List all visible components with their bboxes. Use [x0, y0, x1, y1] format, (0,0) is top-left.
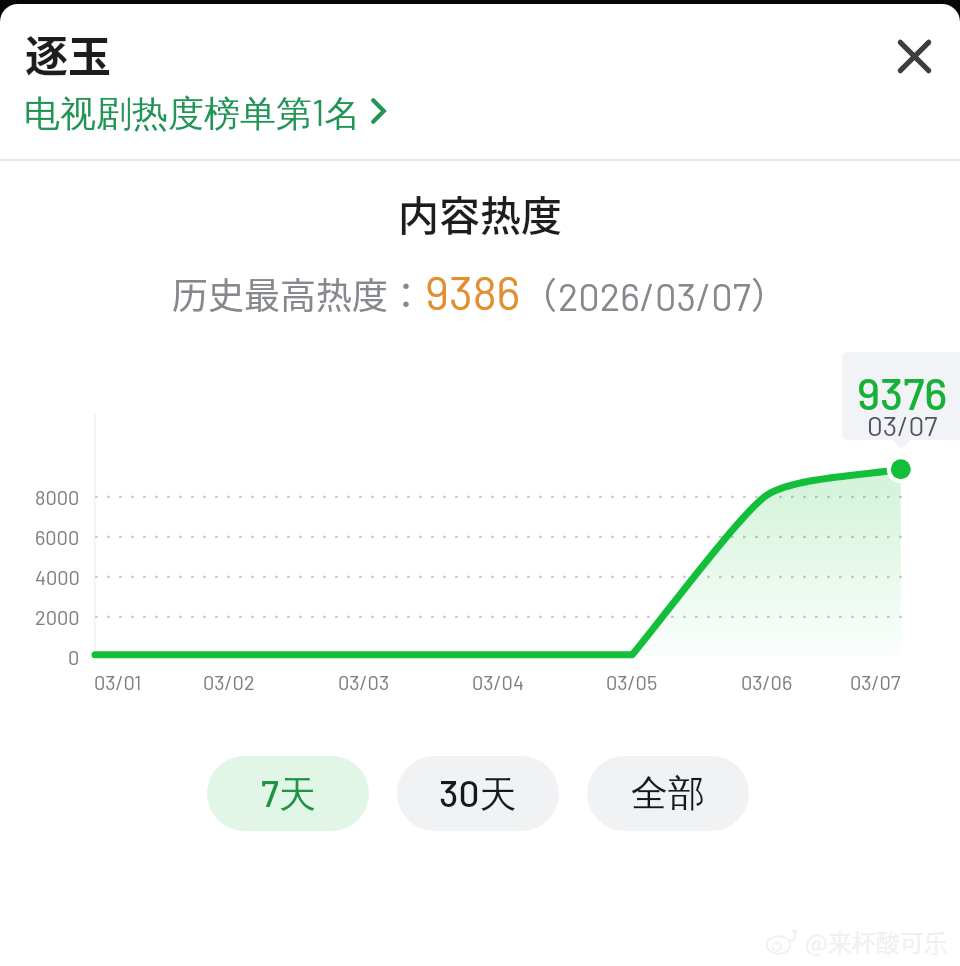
- staticText: 电视剧热度榜单第1名: [24, 90, 361, 137]
- staticText: 逐玉: [25, 22, 111, 84]
- staticText: 2026/03/07: [558, 273, 751, 319]
- staticText: 03/06: [741, 670, 793, 694]
- staticText: 全部: [631, 770, 705, 817]
- staticText: 内容热度: [0, 183, 960, 242]
- staticText: （: [521, 267, 558, 319]
- button[interactable]: 7天: [207, 756, 369, 831]
- staticText: ）: [751, 267, 788, 319]
- staticText: 历史最高热度：: [172, 267, 425, 319]
- staticText: 9376: [857, 366, 948, 419]
- staticText: 0: [68, 645, 80, 669]
- staticText: 2000: [35, 605, 80, 629]
- staticText: 4000: [35, 565, 80, 589]
- staticText: 03/04: [472, 670, 524, 694]
- button[interactable]: Close: [884, 26, 944, 86]
- staticText: 6000: [35, 525, 80, 549]
- staticText: 03/01: [94, 670, 142, 694]
- button[interactable]: 全部: [587, 756, 749, 831]
- staticText: 9386: [425, 264, 521, 319]
- staticText: @来杯酸可乐: [805, 924, 948, 959]
- staticText: 03/07: [867, 408, 938, 442]
- button[interactable]: 电视剧热度榜单第1名: [22, 88, 394, 139]
- staticText: 03/03: [338, 670, 390, 694]
- staticText: 03/02: [203, 670, 255, 694]
- staticText: 03/07: [850, 670, 901, 694]
- staticText: 30天: [439, 770, 517, 818]
- staticText: 8000: [35, 485, 80, 509]
- button[interactable]: 30天: [397, 756, 559, 831]
- staticText: 7天: [261, 770, 316, 818]
- staticText: 03/05: [606, 670, 658, 694]
